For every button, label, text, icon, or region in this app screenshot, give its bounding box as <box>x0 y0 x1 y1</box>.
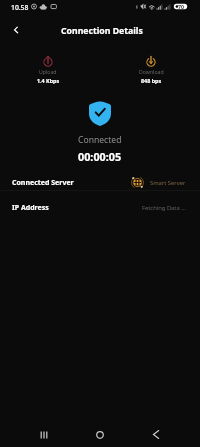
staticText: 70 <box>178 3 184 10</box>
staticText: 848 bps <box>141 77 162 84</box>
button[interactable]: IP Address <box>0 197 200 218</box>
staticText: Connected <box>78 134 122 146</box>
staticText: Connected Server <box>12 178 74 188</box>
button[interactable]: Back <box>138 419 174 447</box>
staticText: 10.58 <box>11 3 29 12</box>
staticText: Fetching Data ... <box>142 204 186 212</box>
staticText: 1.4 Kbps <box>37 77 60 84</box>
staticText: 00:00:05 <box>78 149 122 164</box>
button[interactable]: Connected Server <box>0 172 200 193</box>
staticText: Smart Server <box>150 179 186 187</box>
staticText: Upload <box>39 68 57 75</box>
staticText: Download <box>139 68 164 75</box>
button[interactable]: Home <box>82 419 118 447</box>
button[interactable]: Back <box>8 22 24 38</box>
button[interactable]: Recent apps <box>26 419 62 447</box>
staticText: IP Address <box>12 203 49 213</box>
staticText: Connection Details <box>61 25 143 37</box>
